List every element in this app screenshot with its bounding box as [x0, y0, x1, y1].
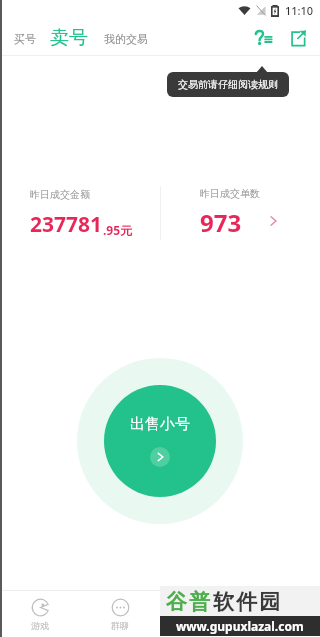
button[interactable]: 出售小号	[77, 358, 243, 524]
staticText: 973	[200, 206, 242, 239]
staticText: .95元	[103, 222, 133, 238]
staticText: 237781	[30, 210, 103, 239]
staticText: 交易前请仔细阅读规则	[178, 78, 278, 91]
staticText: 11:10	[285, 3, 314, 18]
button[interactable]: 分享	[284, 25, 310, 51]
staticText: 昨日成交单数	[200, 187, 260, 200]
staticText: 普	[189, 589, 210, 615]
button[interactable]: 卖号	[48, 26, 90, 50]
staticText: 游戏	[31, 620, 49, 631]
button[interactable]: 游戏	[0, 591, 80, 637]
staticText: 买号	[14, 32, 36, 46]
staticText: 软	[213, 589, 234, 615]
staticText: 出售小号	[130, 415, 190, 434]
staticText: 件	[236, 589, 257, 615]
staticText: 我的	[271, 620, 289, 631]
staticText: 昨日成交金额	[30, 188, 90, 201]
button[interactable]: 昨日成交单数	[200, 180, 277, 246]
staticText: 园	[259, 589, 280, 615]
staticText: 谷	[166, 589, 187, 615]
button[interactable]: 买号	[12, 28, 38, 50]
button[interactable]: 我的交易	[102, 28, 150, 50]
button[interactable]: 帮助	[250, 25, 276, 51]
staticText: 群聊	[111, 620, 129, 631]
staticText: 我的交易	[104, 32, 148, 46]
staticText: 回收	[191, 620, 209, 631]
button[interactable]: 交易前请仔细阅读规则	[167, 66, 289, 97]
button[interactable]: 回收	[160, 591, 240, 637]
staticText: www.gupuxlazal.com	[176, 618, 304, 634]
button[interactable]: 我的	[240, 591, 320, 637]
button[interactable]: 群聊	[80, 591, 160, 637]
staticText: 卖号	[50, 26, 88, 50]
